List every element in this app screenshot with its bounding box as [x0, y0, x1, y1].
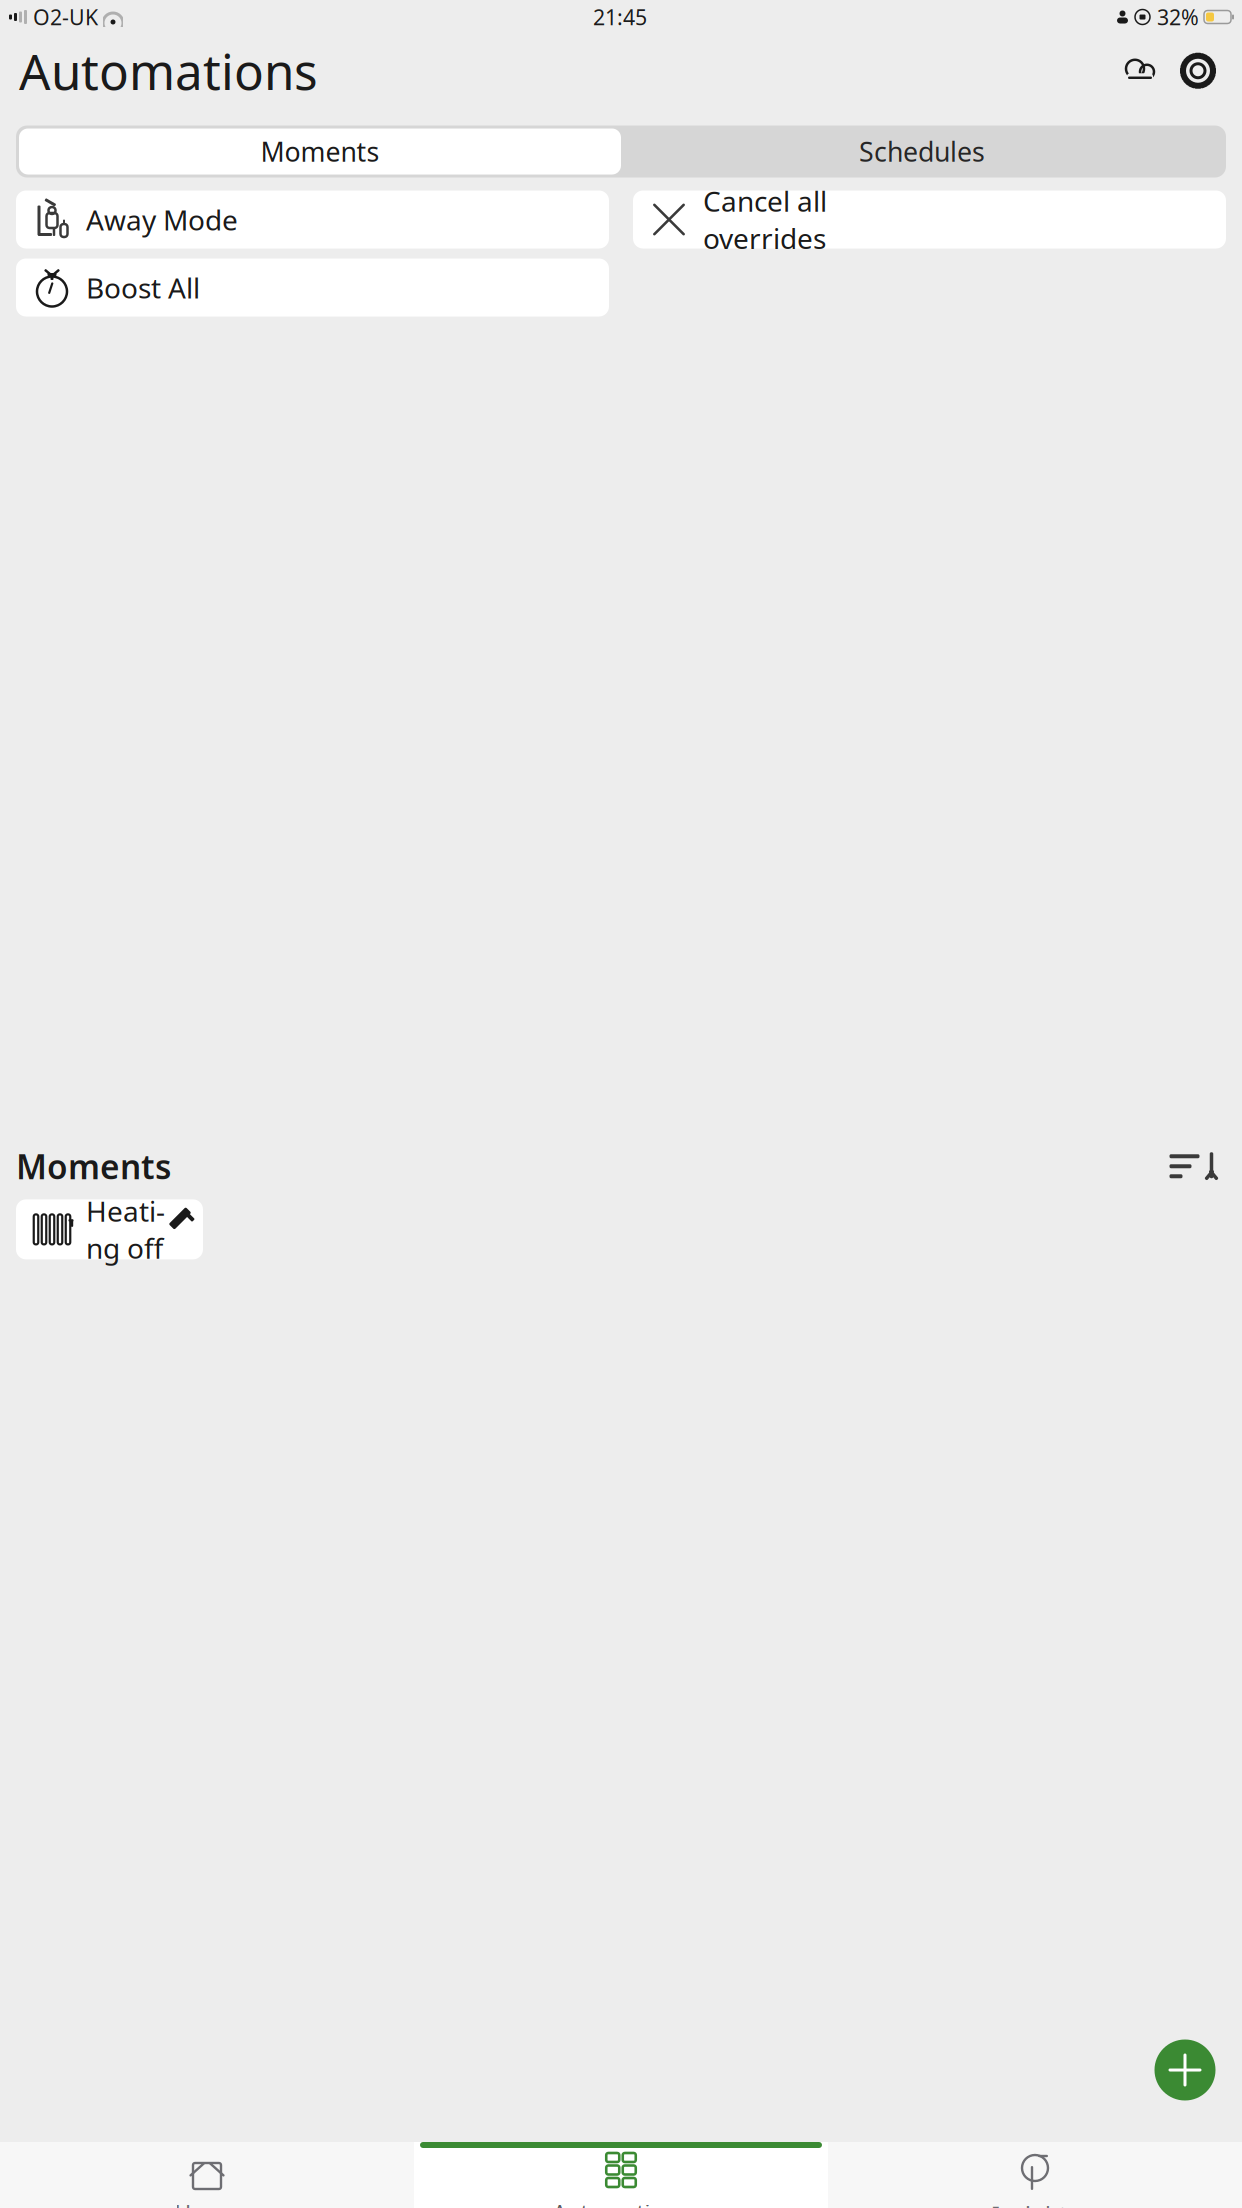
staticText: Away Mode [86, 201, 238, 238]
staticText: O2-UK [33, 3, 98, 31]
button[interactable]: Away Mode [16, 190, 609, 248]
staticText: Automations [552, 2198, 689, 2208]
staticText: Moments [260, 134, 379, 169]
button[interactable]: Settings [1173, 46, 1223, 96]
staticText: Automations [19, 38, 318, 103]
button[interactable]: Add automation [1149, 2034, 1221, 2106]
staticText: 32% [1157, 3, 1199, 31]
button[interactable]: Boost All [16, 258, 609, 316]
button[interactable]: Moments [19, 128, 621, 174]
staticText: Heating off [86, 1192, 165, 1267]
staticText: Schedules [859, 134, 985, 169]
button[interactable]: Heating off [16, 1199, 203, 1259]
button[interactable]: Sort moments [1164, 1146, 1226, 1186]
button[interactable]: Automations [414, 2142, 828, 2208]
staticText: Home [174, 2198, 239, 2208]
button[interactable]: Cancel all overrides [633, 190, 1226, 248]
button[interactable]: Schedules [621, 128, 1223, 174]
staticText: Cancel all overrides [703, 182, 827, 257]
button[interactable]: Insights [828, 2142, 1242, 2208]
staticText: Boost All [86, 269, 200, 306]
button[interactable]: Cloud status [1115, 46, 1165, 96]
staticText: Moments [16, 1144, 171, 1188]
staticText: 21:45 [593, 3, 647, 31]
button[interactable]: Home [0, 2142, 414, 2208]
staticText: Insights [992, 2200, 1078, 2208]
